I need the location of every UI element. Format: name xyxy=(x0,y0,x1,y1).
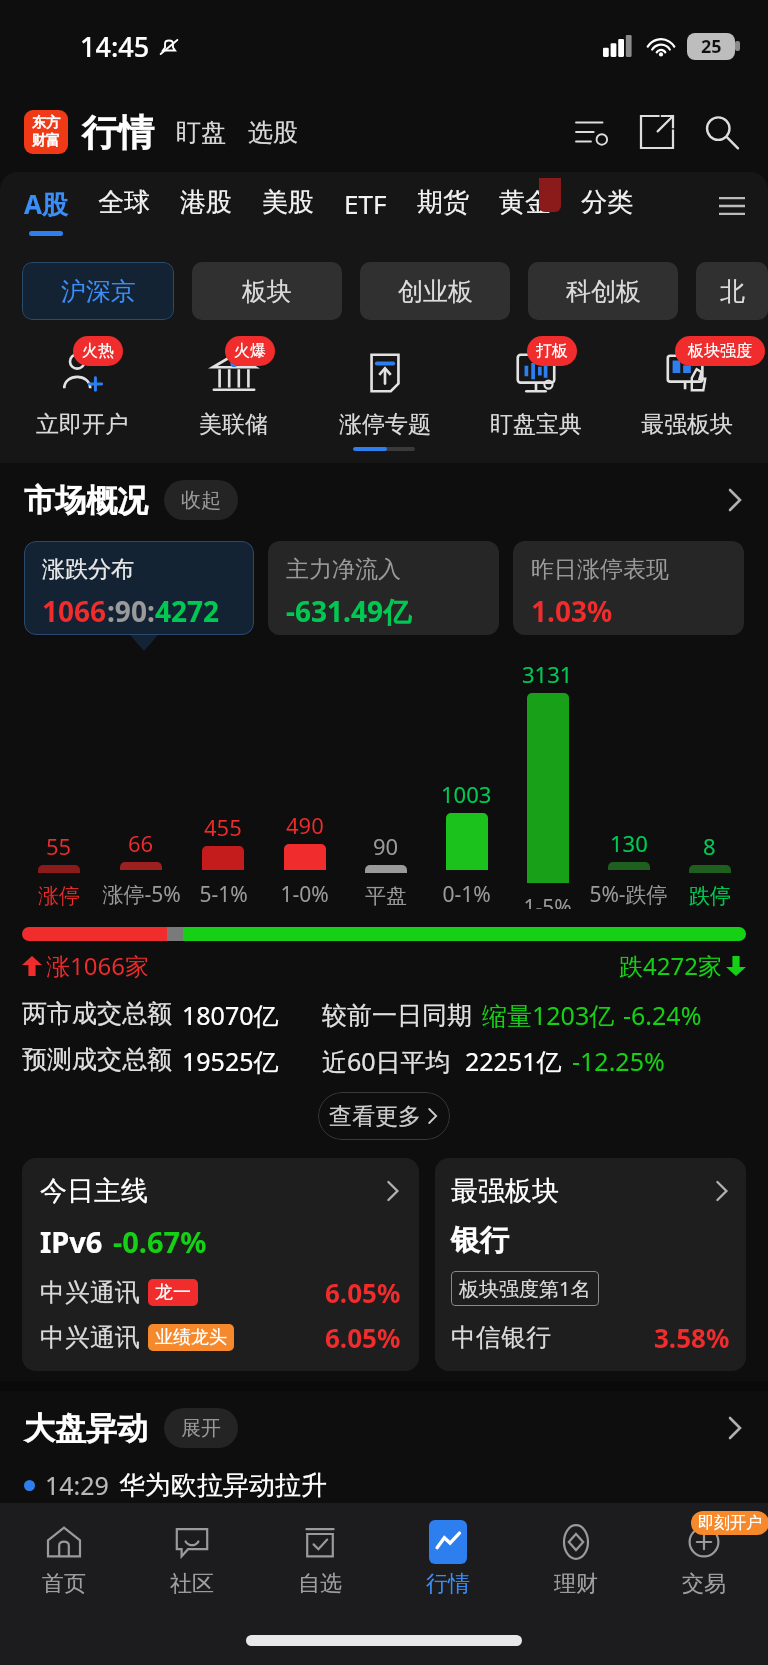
staticText: 火爆 xyxy=(234,341,266,361)
button[interactable]: 最强板块 xyxy=(435,1158,746,1371)
staticText: 两市成交总额 xyxy=(22,998,172,1029)
button[interactable]: 沪深京 xyxy=(22,262,174,320)
staticText: 1066 xyxy=(42,592,107,630)
staticText: 1-0% xyxy=(280,880,329,909)
button[interactable]: 科创板 xyxy=(528,262,678,320)
button[interactable]: More tabs xyxy=(712,186,752,226)
staticText: 首页 xyxy=(42,1570,86,1598)
staticText: 火热 xyxy=(82,341,114,361)
staticText: 分类 xyxy=(581,186,633,219)
staticText: 港股 xyxy=(180,186,232,219)
staticText: 美联储 xyxy=(199,410,268,439)
staticText: 14:29 xyxy=(45,1468,109,1502)
staticText: 中兴通讯 xyxy=(40,1322,140,1353)
button[interactable]: 盯盘 xyxy=(176,117,226,148)
button[interactable]: 涨跌分布 xyxy=(24,541,254,635)
staticText: 中信银行 xyxy=(451,1322,551,1353)
button[interactable]: Search xyxy=(698,109,744,155)
staticText: 创业板 xyxy=(398,276,473,307)
staticText: 455 xyxy=(204,812,242,842)
button[interactable]: 板块 xyxy=(192,262,342,320)
staticText: 今日主线 xyxy=(40,1174,148,1208)
button[interactable]: 首页 xyxy=(0,1503,128,1615)
button[interactable]: 火爆 xyxy=(158,342,309,439)
button[interactable]: 黄金 xyxy=(499,186,551,233)
staticText: 财富 xyxy=(32,132,60,150)
staticText: 美股 xyxy=(262,186,314,219)
button[interactable]: ETF xyxy=(344,186,387,235)
button[interactable]: Sort settings xyxy=(570,109,616,155)
staticText: 板块强度 xyxy=(688,341,752,361)
staticText: 板块 xyxy=(242,276,292,307)
staticText: 主力净流入 xyxy=(286,555,401,584)
staticText: 中兴通讯 xyxy=(40,1277,140,1308)
button[interactable]: 市场概况 xyxy=(24,471,744,529)
staticText: 华为欧拉异动拉升 xyxy=(119,1469,327,1502)
button[interactable]: 港股 xyxy=(180,186,232,233)
staticText: 18070亿 xyxy=(182,998,279,1032)
button[interactable]: 北 xyxy=(696,262,768,320)
button[interactable]: 自选 xyxy=(256,1503,384,1615)
button[interactable]: 行情 xyxy=(384,1503,512,1615)
staticText: :90: xyxy=(107,592,155,630)
staticText: -12.25% xyxy=(572,1044,665,1078)
button[interactable]: Share xyxy=(634,109,680,155)
button[interactable]: 主力净流入 xyxy=(268,541,499,635)
staticText: 66 xyxy=(128,828,154,858)
button[interactable]: 行情 xyxy=(82,110,154,155)
staticText: 跌4272家 xyxy=(619,949,722,982)
button[interactable]: 全球 xyxy=(98,186,150,233)
staticText: 展开 xyxy=(181,1416,221,1441)
staticText: 0-1% xyxy=(442,880,491,909)
staticText: 沪深京 xyxy=(61,276,136,307)
staticText: 55 xyxy=(46,831,72,861)
button[interactable]: 查看更多 xyxy=(318,1092,450,1140)
button[interactable]: 涨停专题 xyxy=(309,342,460,439)
button[interactable]: 创业板 xyxy=(360,262,510,320)
staticText: 跌停 xyxy=(689,883,731,909)
button[interactable]: 昨日涨停表现 xyxy=(513,541,744,635)
button[interactable]: 今日主线 xyxy=(22,1158,419,1371)
staticText: 理财 xyxy=(554,1570,598,1598)
button[interactable]: 大盘异动 xyxy=(24,1391,744,1465)
staticText: 期货 xyxy=(417,186,469,219)
staticText: 东方 xyxy=(32,114,60,132)
staticText: 银行 xyxy=(451,1222,509,1259)
staticText: 昨日涨停表现 xyxy=(531,555,669,584)
button[interactable]: 东方 xyxy=(24,110,68,154)
button[interactable]: 分类 xyxy=(581,186,633,233)
button[interactable]: 美股 xyxy=(262,186,314,233)
staticText: 自选 xyxy=(298,1570,342,1598)
staticText: 立即开户 xyxy=(36,410,128,439)
staticText: 14:45 xyxy=(80,28,150,65)
staticText: ETF xyxy=(344,186,387,221)
staticText: 龙一 xyxy=(155,1281,191,1304)
staticText: 平盘 xyxy=(365,883,407,909)
staticText: 1.03% xyxy=(531,592,613,630)
button[interactable]: A股 xyxy=(24,186,68,236)
staticText: 行情 xyxy=(426,1570,470,1598)
staticText: 业绩龙头 xyxy=(155,1326,227,1349)
button[interactable]: 打板 xyxy=(460,342,611,439)
button[interactable]: 期货 xyxy=(417,186,469,233)
button[interactable]: 理财 xyxy=(512,1503,640,1615)
staticText: 查看更多 xyxy=(329,1102,421,1131)
staticText: 4272 xyxy=(155,592,220,630)
staticText: 涨停 xyxy=(38,883,80,909)
staticText: 收起 xyxy=(181,488,221,513)
staticText: 黄金 xyxy=(499,186,551,219)
button[interactable]: 板块强度 xyxy=(611,342,762,439)
staticText: 6.05% xyxy=(325,1320,401,1355)
button[interactable]: 选股 xyxy=(248,117,298,148)
staticText: 打板 xyxy=(536,341,568,361)
staticText: 交易 xyxy=(682,1570,726,1598)
staticText: 5%-跌停 xyxy=(589,880,668,909)
staticText: 最强板块 xyxy=(641,410,733,439)
staticText: 大盘异动 xyxy=(24,1409,148,1448)
staticText: 90 xyxy=(373,831,399,861)
button[interactable]: 交易 xyxy=(640,1503,768,1615)
staticText: 盯盘宝典 xyxy=(490,410,582,439)
button[interactable]: 社区 xyxy=(128,1503,256,1615)
button[interactable]: 火热 xyxy=(6,342,158,439)
staticText: 涨停专题 xyxy=(339,410,431,439)
